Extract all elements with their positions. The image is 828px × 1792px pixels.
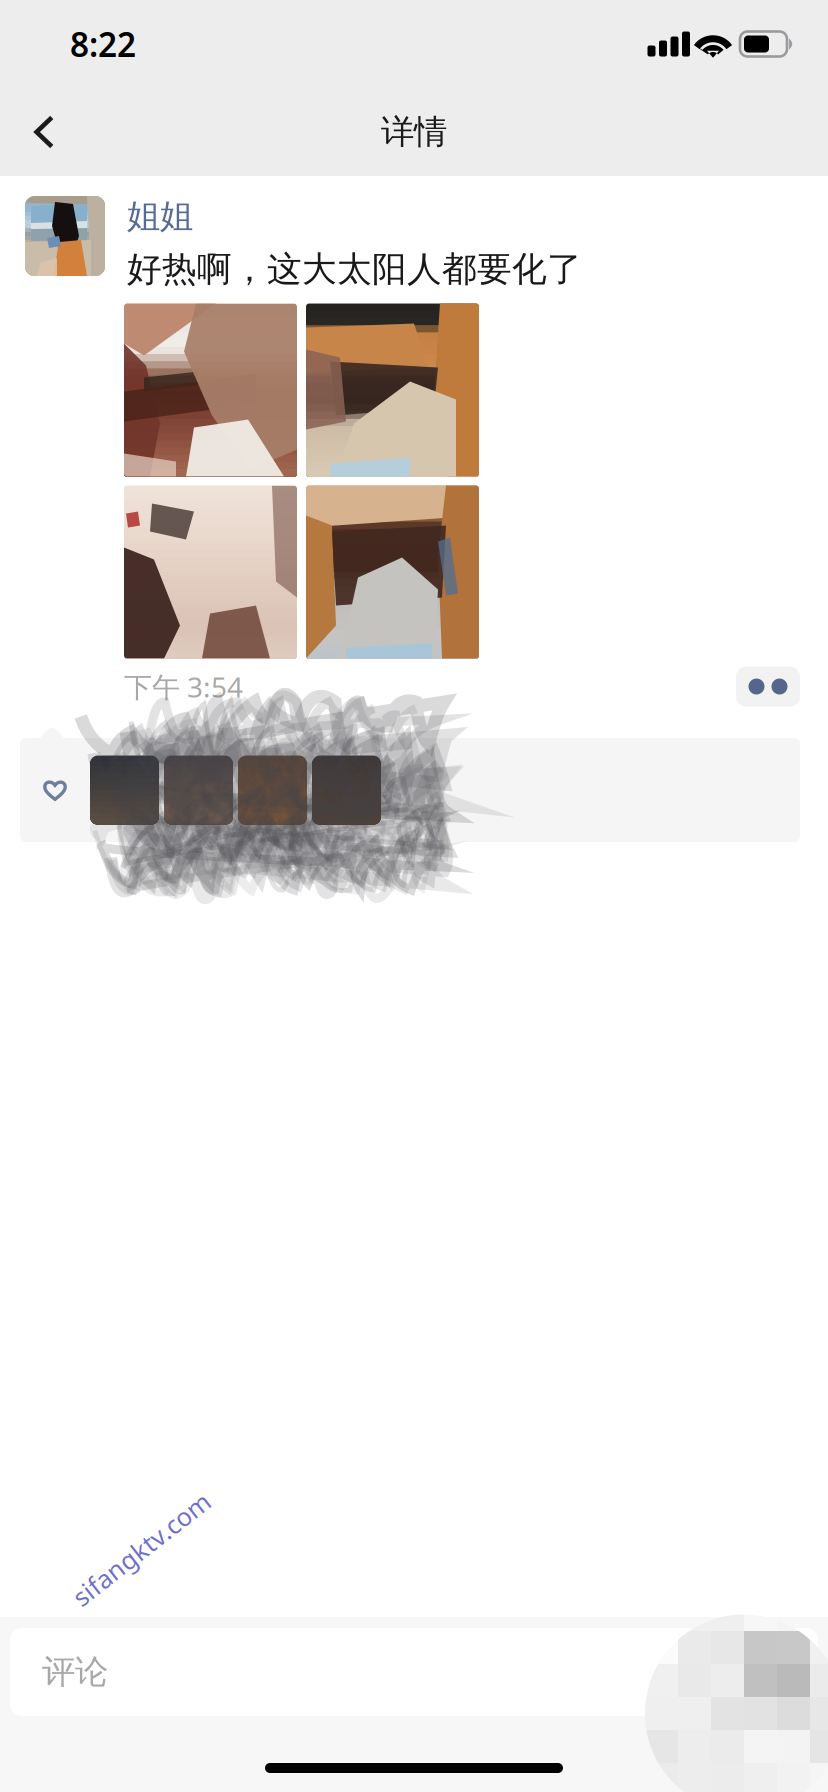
- staticText: 详情: [381, 111, 447, 152]
- button[interactable]: 评论: [10, 1628, 818, 1716]
- button[interactable]: Back: [0, 88, 88, 176]
- button[interactable]: Photo 2: [306, 303, 479, 476]
- button[interactable]: Photo 3: [124, 485, 297, 658]
- staticText: 8:22: [70, 22, 136, 66]
- button[interactable]: Like: [20, 738, 800, 842]
- button[interactable]: Photo 4: [306, 485, 479, 658]
- staticText: 下午 3:54: [124, 668, 243, 705]
- button[interactable]: 姐姐's avatar: [25, 196, 105, 276]
- staticText: sifangktv.com: [58, 1532, 225, 1566]
- button[interactable]: Photo 1: [124, 303, 297, 476]
- staticText: 好热啊，这大太阳人都要化了: [127, 248, 582, 290]
- staticText: 姐姐: [127, 196, 193, 237]
- button[interactable]: 姐姐: [127, 196, 193, 237]
- button[interactable]: More actions: [736, 666, 800, 706]
- staticText: 评论: [42, 1651, 108, 1692]
